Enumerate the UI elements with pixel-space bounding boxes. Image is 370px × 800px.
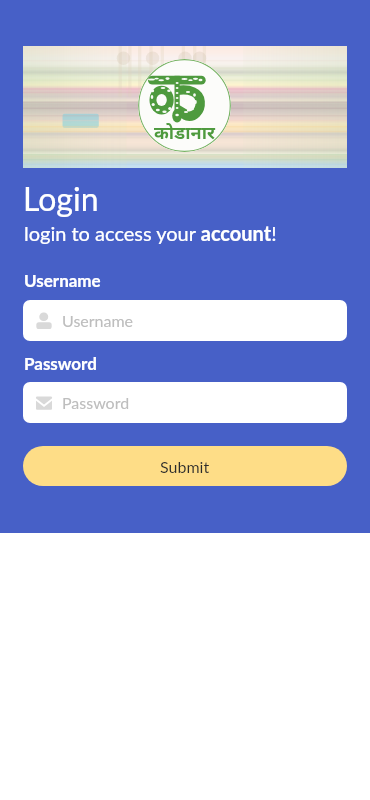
button[interactable]: Username — [23, 300, 347, 341]
staticText: Submit — [160, 457, 210, 476]
button[interactable]: Submit — [23, 446, 347, 486]
staticText: Username — [62, 311, 134, 330]
staticText: कोडानार — [154, 120, 215, 145]
staticText: login to access your account! — [24, 221, 277, 245]
staticText: Login — [23, 179, 99, 217]
staticText: Password — [24, 353, 97, 373]
button[interactable]: Password — [23, 382, 347, 423]
staticText: Password — [62, 393, 130, 412]
staticText: Username — [24, 270, 101, 290]
